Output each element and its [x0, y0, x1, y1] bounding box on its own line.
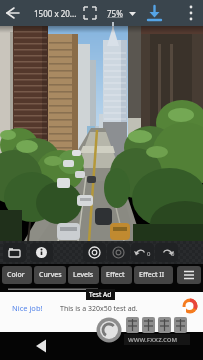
staticText: Effect II — [139, 270, 165, 280]
button[interactable] — [107, 243, 130, 262]
staticText: 0 — [171, 250, 175, 258]
button[interactable]: Effect II — [134, 266, 173, 284]
button[interactable] — [82, 5, 98, 21]
staticText: Curves — [39, 270, 62, 280]
button[interactable] — [183, 2, 203, 22]
staticText: This is a 320x50 test ad. — [60, 304, 138, 314]
staticText: Effect — [106, 270, 125, 280]
button[interactable] — [30, 243, 53, 262]
button[interactable]: 75% — [105, 4, 139, 22]
staticText: Test Ad — [89, 290, 112, 299]
button[interactable]: Effect — [101, 266, 132, 284]
button[interactable]: Levels — [68, 266, 99, 284]
button[interactable]: Test Ad — [0, 292, 203, 332]
button[interactable] — [2, 2, 24, 24]
staticText: 1500 x 20... — [34, 8, 77, 19]
button[interactable]: Color — [2, 266, 32, 284]
button[interactable] — [30, 334, 54, 358]
button[interactable] — [131, 243, 154, 262]
staticText: 0 — [147, 250, 151, 258]
button[interactable] — [3, 243, 26, 262]
staticText: Nice job! — [12, 303, 43, 313]
staticText: WWW.FXXZ.COM — [128, 336, 178, 344]
button[interactable] — [83, 243, 106, 262]
staticText: 75% — [107, 8, 123, 19]
button[interactable] — [155, 243, 178, 262]
button[interactable] — [145, 4, 164, 23]
button[interactable]: Curves — [34, 266, 66, 284]
staticText: Color — [7, 270, 25, 280]
button[interactable] — [177, 266, 201, 284]
staticText: Levels — [73, 270, 94, 280]
